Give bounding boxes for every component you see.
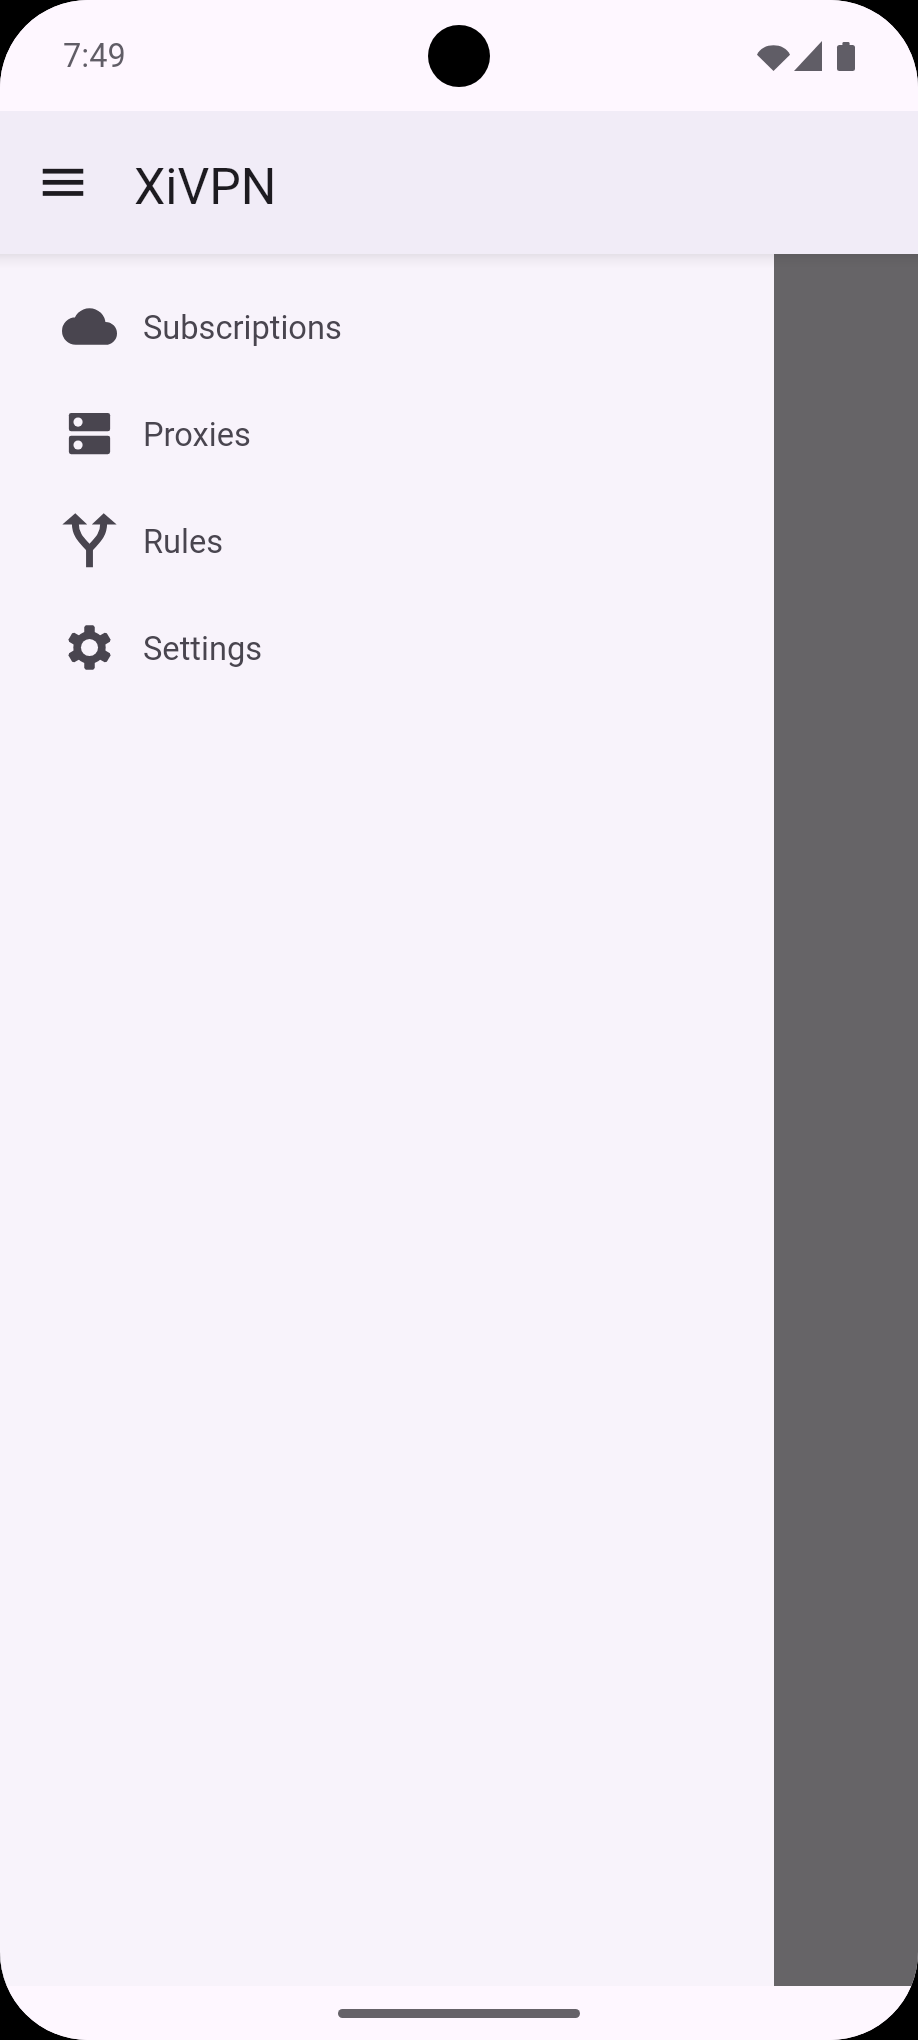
button[interactable]: Settings <box>0 595 774 702</box>
staticText: XiVPN <box>134 158 277 217</box>
staticText: 7:49 <box>63 37 126 75</box>
button[interactable]: Proxies <box>0 381 774 488</box>
staticText: Proxies <box>143 416 251 454</box>
button[interactable]: Rules <box>0 488 774 595</box>
button[interactable]: Open navigation menu <box>9 129 117 237</box>
staticText: Subscriptions <box>143 309 342 347</box>
staticText: Settings <box>143 630 263 668</box>
button[interactable]: Subscriptions <box>0 274 774 381</box>
staticText: Rules <box>143 523 224 561</box>
